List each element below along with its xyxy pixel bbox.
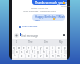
button[interactable]: d <box>25 50 29 54</box>
button[interactable]: Happy Birthday!! Wish you health and hap… <box>32 14 65 21</box>
staticText: e <box>23 46 25 50</box>
staticText: l <box>61 50 62 54</box>
button[interactable]: g <box>35 50 40 54</box>
staticText: Happy Birthday!! Wish you health and hap… <box>35 15 65 21</box>
staticText: Chat message · Delivered Wed <box>23 10 56 13</box>
button[interactable]: w <box>17 46 21 50</box>
staticText: m <box>57 54 60 58</box>
button[interactable]: Text message <box>21 34 39 38</box>
button[interactable]: v <box>38 54 43 58</box>
button[interactable]: t <box>32 46 37 50</box>
staticText: j <box>49 50 50 54</box>
button[interactable]: k <box>53 50 58 54</box>
staticText: The <box>28 40 33 44</box>
button[interactable]: h <box>41 50 46 54</box>
staticText: ^ <box>14 54 16 58</box>
button[interactable]: u <box>44 46 49 50</box>
button[interactable]: n <box>50 54 55 58</box>
staticText: < <box>64 54 66 58</box>
staticText: c <box>34 54 36 58</box>
button[interactable]: b <box>44 54 49 58</box>
staticText: s <box>21 50 23 54</box>
staticText: x <box>28 54 30 58</box>
staticText: a <box>16 50 18 54</box>
button[interactable]: m <box>56 54 61 58</box>
staticText: t <box>34 46 35 50</box>
button[interactable]: s <box>20 50 24 54</box>
staticText: w <box>18 46 21 50</box>
staticText: f <box>32 50 33 54</box>
staticText: Chat message <box>22 25 38 28</box>
staticText: z <box>21 54 23 58</box>
staticText: i <box>52 46 53 50</box>
button[interactable]: Send <box>63 34 65 36</box>
button[interactable]: ^ <box>12 54 18 58</box>
button[interactable]: y <box>38 46 43 50</box>
button[interactable]: Thanks so much, you're the <box>32 0 67 5</box>
staticText: n <box>52 54 54 58</box>
button[interactable]: i <box>50 46 55 50</box>
button[interactable]: f <box>30 50 34 54</box>
button[interactable]: < <box>62 54 67 58</box>
staticText: b <box>46 54 48 58</box>
staticText: Thanks so much, you're the <box>35 1 67 5</box>
button[interactable]: Add attachment <box>14 33 19 38</box>
button[interactable]: q <box>12 46 16 50</box>
staticText: 10:31 AM <box>61 5 72 8</box>
button[interactable]: a <box>15 50 19 54</box>
staticText: d <box>26 50 28 54</box>
staticText: v <box>40 54 42 58</box>
button[interactable]: c <box>32 54 37 58</box>
staticText: Today 10:34 AM <box>31 7 48 10</box>
staticText: y <box>40 46 42 50</box>
button[interactable]: j <box>47 50 52 54</box>
staticText: I'm <box>44 40 48 44</box>
staticText: u <box>46 46 48 50</box>
staticText: My <box>59 40 63 44</box>
staticText: r <box>28 46 30 50</box>
staticText: g <box>37 50 39 54</box>
button[interactable]: z <box>19 54 25 58</box>
staticText: I <box>16 40 17 44</box>
staticText: p <box>64 46 66 50</box>
button[interactable]: e <box>22 46 26 50</box>
button[interactable]: l <box>59 50 64 54</box>
staticText: k <box>55 50 57 54</box>
staticText: o <box>58 46 60 50</box>
staticText: h <box>43 50 45 54</box>
button[interactable]: p <box>62 46 67 50</box>
button[interactable]: Chat message <box>19 25 38 28</box>
button[interactable]: o <box>56 46 61 50</box>
button[interactable]: r <box>27 46 31 50</box>
button[interactable]: x <box>26 54 31 58</box>
staticText: q <box>13 46 15 50</box>
